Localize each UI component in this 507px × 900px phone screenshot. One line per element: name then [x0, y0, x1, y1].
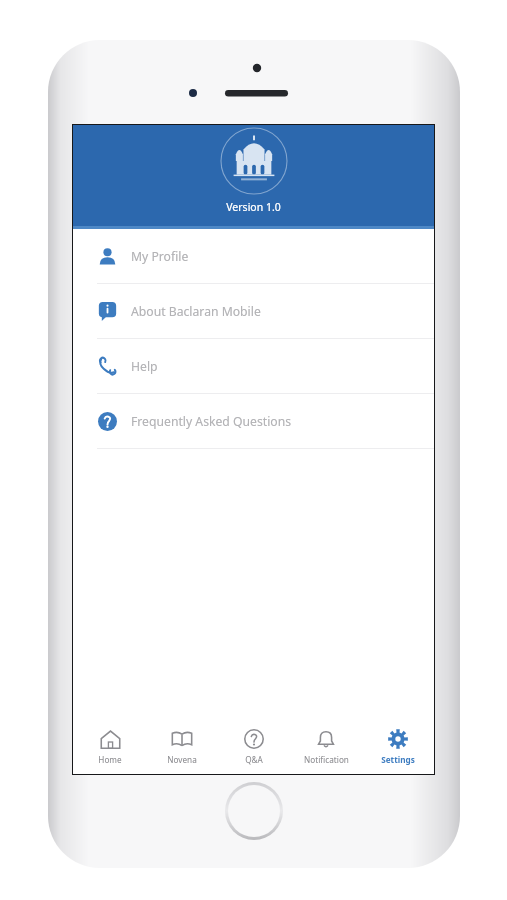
staticText: Version 1.0	[226, 200, 281, 214]
button[interactable]: Settings	[362, 718, 434, 774]
staticText: My Profile	[131, 248, 189, 265]
button[interactable]: Home button	[225, 782, 283, 840]
staticText: Q&A	[245, 754, 263, 765]
button[interactable]: Q&A	[218, 718, 290, 774]
staticText: Home	[98, 754, 122, 765]
staticText: About Baclaran Mobile	[131, 303, 261, 320]
button[interactable]: Help	[73, 339, 434, 393]
button[interactable]: Home	[73, 718, 146, 774]
button[interactable]: My Profile	[73, 229, 434, 283]
button[interactable]: Notification	[290, 718, 362, 774]
staticText: Help	[131, 358, 158, 375]
button[interactable]: About Baclaran Mobile	[73, 284, 434, 338]
staticText: Frequently Asked Questions	[131, 413, 292, 430]
staticText: Novena	[167, 754, 197, 765]
staticText: Settings	[381, 754, 415, 765]
button[interactable]: Frequently Asked Questions	[73, 394, 434, 448]
button[interactable]: Novena	[146, 718, 218, 774]
staticText: Notification	[304, 754, 349, 765]
